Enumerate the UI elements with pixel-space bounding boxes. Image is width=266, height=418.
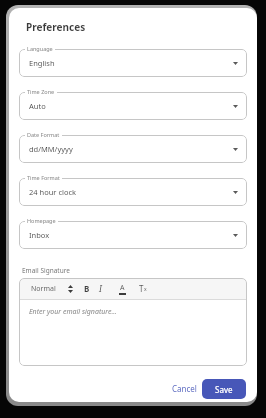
button[interactable] bbox=[68, 285, 73, 293]
staticText: Homepage bbox=[27, 217, 56, 224]
button[interactable]: Normal bbox=[31, 284, 56, 294]
staticText: Preferences bbox=[26, 20, 86, 34]
staticText: I bbox=[99, 283, 102, 294]
staticText: A bbox=[120, 283, 125, 293]
staticText: Date Format bbox=[27, 131, 60, 138]
button[interactable]: T bbox=[139, 283, 147, 294]
staticText: Time Zone bbox=[27, 88, 55, 95]
button[interactable]: Inbox bbox=[19, 221, 247, 249]
staticText: dd/MM/yyyy bbox=[29, 144, 73, 154]
staticText: T bbox=[139, 283, 144, 294]
staticText: B bbox=[84, 283, 90, 294]
button[interactable]: English bbox=[19, 49, 247, 77]
button[interactable]: 24 hour clock bbox=[19, 178, 247, 206]
staticText: Email Signature bbox=[22, 266, 70, 275]
staticText: x bbox=[144, 286, 147, 293]
button[interactable]: Enter your email signature... bbox=[19, 300, 247, 366]
button[interactable]: Auto bbox=[19, 92, 247, 120]
button[interactable]: Cancel bbox=[172, 383, 197, 394]
staticText: Inbox bbox=[29, 230, 50, 240]
button[interactable]: Save bbox=[202, 379, 246, 399]
staticText: Cancel bbox=[172, 383, 197, 394]
button[interactable]: B bbox=[84, 283, 90, 294]
staticText: 24 hour clock bbox=[29, 187, 77, 197]
staticText: Save bbox=[215, 384, 233, 395]
staticText: Language bbox=[27, 45, 53, 52]
button[interactable]: A bbox=[119, 283, 126, 295]
staticText: Enter your email signature... bbox=[29, 307, 117, 317]
staticText: Time Format bbox=[27, 174, 60, 181]
button[interactable]: I bbox=[99, 283, 102, 294]
button[interactable]: dd/MM/yyyy bbox=[19, 135, 247, 163]
staticText: Auto bbox=[29, 101, 46, 111]
staticText: Normal bbox=[31, 284, 56, 294]
staticText: English bbox=[29, 58, 55, 68]
